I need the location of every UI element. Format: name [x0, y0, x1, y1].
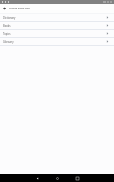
staticText: Glossary: [3, 40, 106, 44]
staticText: Books: [3, 24, 106, 28]
button[interactable]: Back: [27, 174, 47, 182]
button[interactable]: Topics: [0, 30, 114, 37]
staticText: Choose Index Type: [9, 7, 30, 10]
button[interactable]: Home: [47, 174, 67, 182]
button[interactable]: Dictionary: [0, 14, 114, 21]
staticText: Dictionary: [3, 16, 106, 20]
button[interactable]: Glossary: [0, 38, 114, 45]
button[interactable]: Navigate up: [0, 4, 9, 12]
staticText: Topics: [3, 32, 106, 36]
button[interactable]: Books: [0, 22, 114, 29]
button[interactable]: Recent apps: [67, 174, 87, 182]
